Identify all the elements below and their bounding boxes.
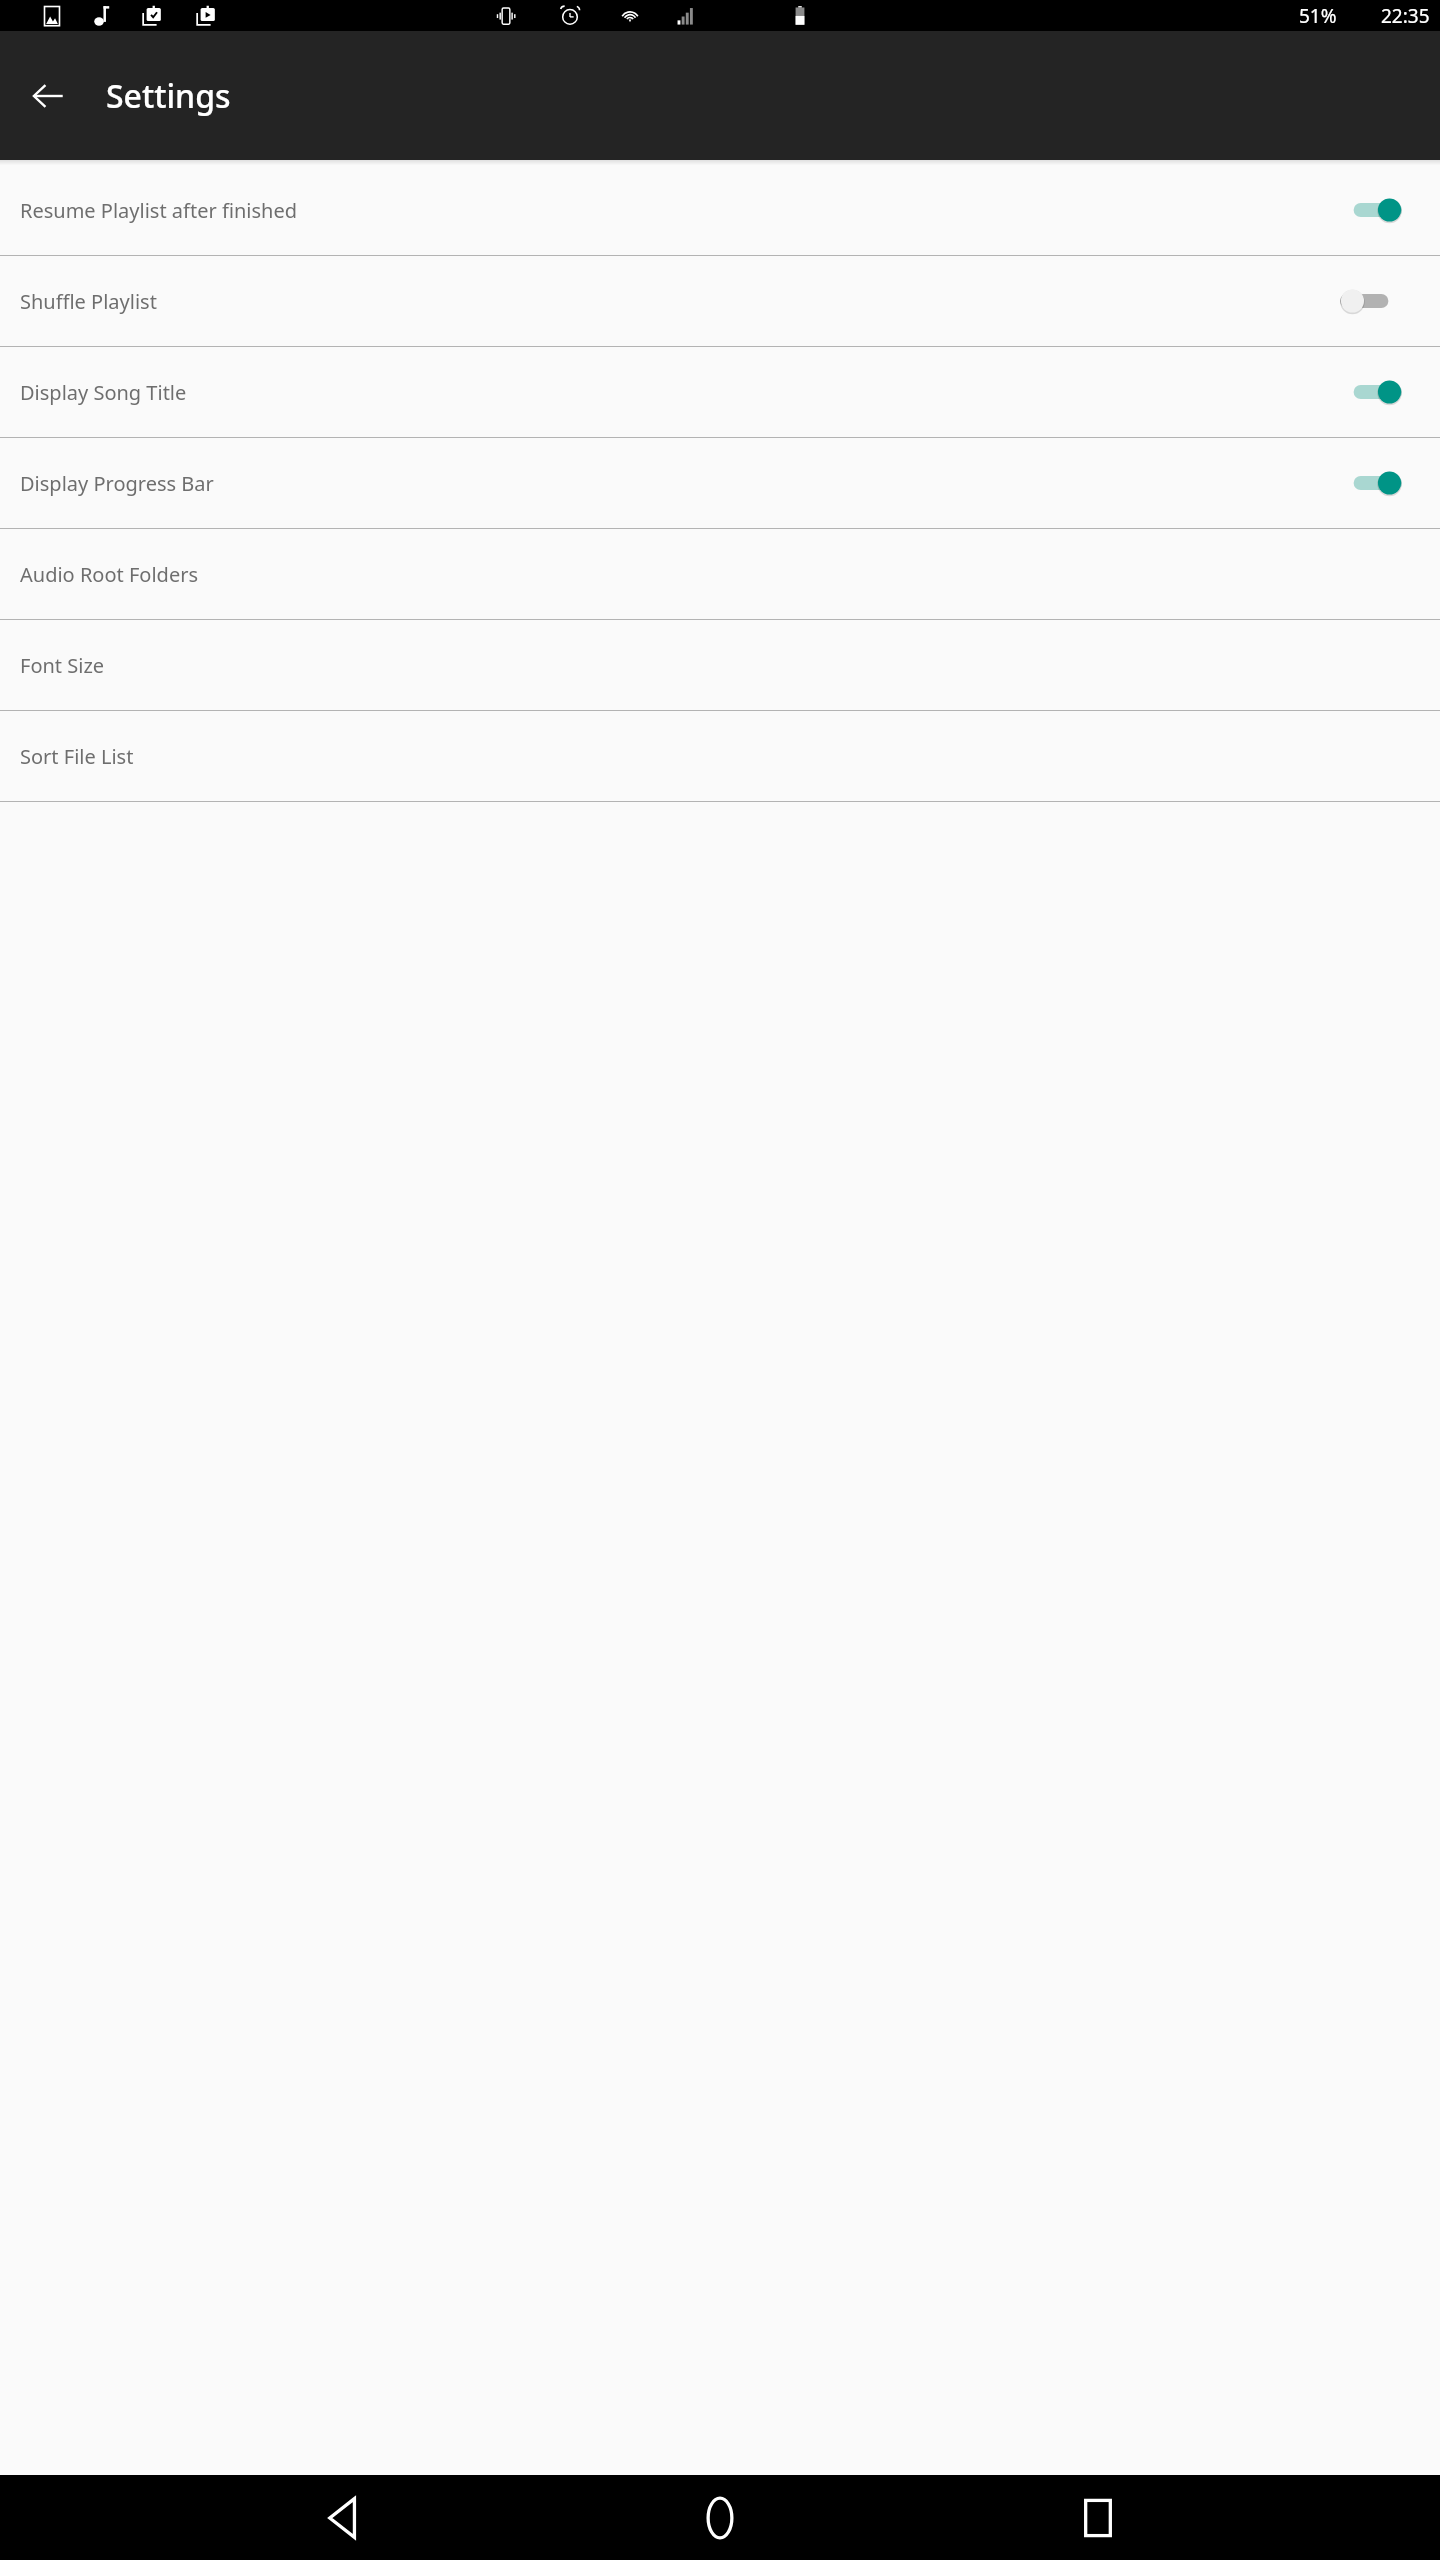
staticText: Sort File List (20, 743, 1402, 770)
staticText: Font Size (20, 652, 1402, 679)
button[interactable]: Resume Playlist after finished (0, 165, 1440, 255)
staticText: Display Song Title (20, 379, 1340, 406)
button[interactable]: Recent apps (1063, 2483, 1133, 2553)
button[interactable]: Audio Root Folders (0, 529, 1440, 619)
button[interactable]: Back (22, 70, 74, 122)
button[interactable]: Display Song Title (0, 347, 1440, 437)
staticText: 51% (1299, 3, 1337, 29)
staticText: Display Progress Bar (20, 470, 1340, 497)
button[interactable]: Display Progress Bar (0, 438, 1440, 528)
staticText: Resume Playlist after finished (20, 197, 1340, 224)
button[interactable]: Sort File List (0, 711, 1440, 801)
button[interactable]: Shuffle Playlist (0, 256, 1440, 346)
button[interactable]: Font Size (0, 620, 1440, 710)
button[interactable]: Home (685, 2483, 755, 2553)
staticText: 22:35 (1381, 3, 1430, 29)
staticText: Audio Root Folders (20, 561, 1402, 588)
staticText: Shuffle Playlist (20, 288, 1340, 315)
button[interactable]: Back (308, 2483, 378, 2553)
staticText: Settings (106, 74, 231, 118)
